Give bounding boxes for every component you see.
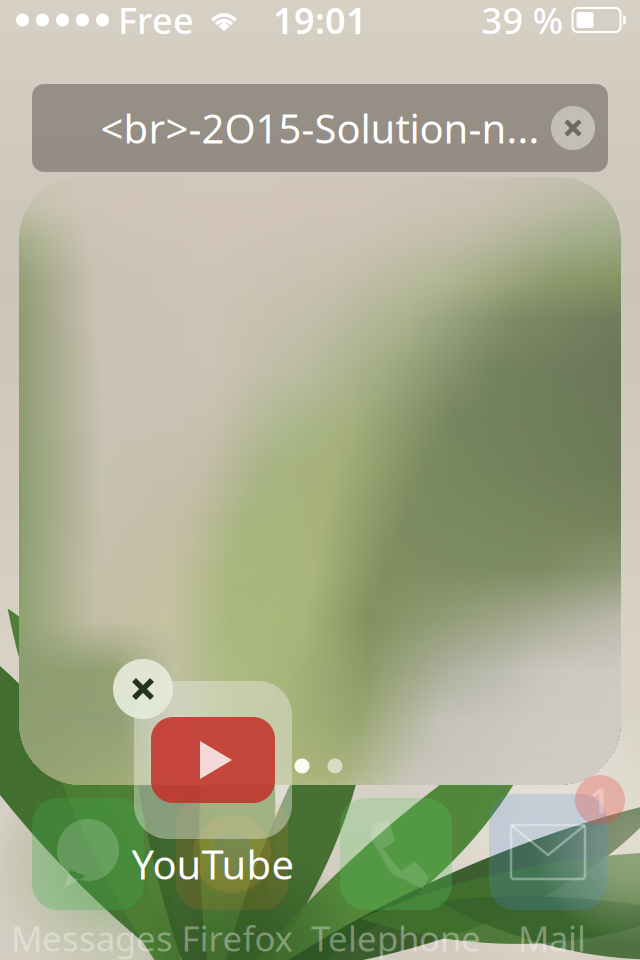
staticText: Mail <box>518 915 586 960</box>
staticText: YouTube <box>131 837 294 890</box>
staticText: <br>-2O15-Solution-n... <box>100 101 539 154</box>
staticText: Telephone <box>311 915 481 960</box>
staticText: 19:01 <box>273 0 367 44</box>
button[interactable]: YouTube <box>134 681 292 839</box>
staticText: 1 <box>590 777 610 823</box>
button[interactable]: Delete YouTube <box>113 659 173 719</box>
staticText: Messages <box>11 915 173 960</box>
staticText: Firefox <box>181 915 292 960</box>
staticText: 39 % <box>481 0 563 44</box>
button[interactable]: Clear folder name <box>538 88 608 168</box>
staticText: Free <box>118 0 194 44</box>
